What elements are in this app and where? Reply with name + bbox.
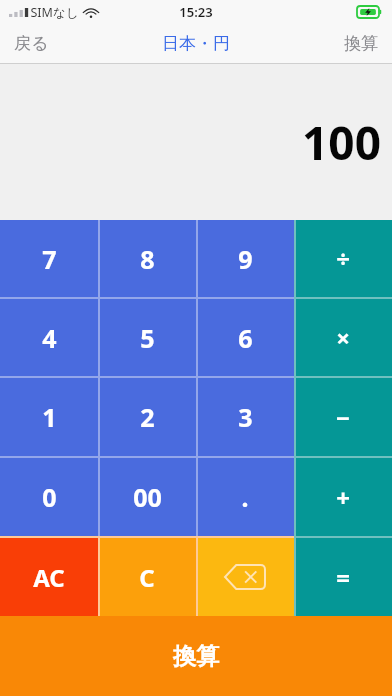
button[interactable]: 2	[98, 378, 196, 456]
staticText: 9	[238, 242, 253, 276]
staticText: SIMなし	[30, 4, 79, 21]
button[interactable]: 6	[196, 299, 294, 376]
button[interactable]: 00	[98, 458, 196, 536]
staticText: +	[336, 481, 350, 514]
staticText: 3	[238, 400, 253, 434]
staticText: 6	[238, 321, 253, 355]
staticText: 2	[140, 400, 155, 434]
button[interactable]: 1	[0, 378, 98, 456]
button[interactable]: 0	[0, 458, 98, 536]
staticText: .	[241, 480, 249, 514]
button[interactable]: 換算	[330, 24, 392, 63]
button[interactable]: =	[294, 538, 392, 616]
staticText: 日本・円	[162, 33, 230, 54]
button[interactable]: +	[294, 458, 392, 536]
staticText: 戻る	[14, 33, 49, 54]
button[interactable]: Backspace	[196, 538, 294, 616]
staticText: 15:23	[179, 3, 213, 21]
staticText: ×	[336, 321, 350, 354]
button[interactable]: 8	[98, 220, 196, 297]
staticText: 00	[133, 480, 162, 514]
staticText: =	[336, 561, 350, 594]
staticText: 0	[42, 480, 57, 514]
button[interactable]: ×	[294, 299, 392, 376]
button[interactable]: C	[98, 538, 196, 616]
button[interactable]: −	[294, 378, 392, 456]
staticText: −	[336, 401, 350, 434]
button[interactable]: 3	[196, 378, 294, 456]
staticText: 1	[42, 400, 57, 434]
button[interactable]: 7	[0, 220, 98, 297]
button[interactable]: AC	[0, 538, 98, 616]
staticText: ÷	[336, 242, 350, 275]
button[interactable]: 5	[98, 299, 196, 376]
staticText: 5	[140, 321, 155, 355]
staticText: 4	[42, 321, 57, 355]
staticText: 100	[302, 111, 381, 174]
staticText: 8	[140, 242, 155, 276]
button[interactable]: ÷	[294, 220, 392, 297]
button[interactable]: .	[196, 458, 294, 536]
button[interactable]: 9	[196, 220, 294, 297]
staticText: 換算	[344, 33, 378, 54]
staticText: C	[139, 561, 155, 594]
staticText: 換算	[173, 642, 219, 671]
button[interactable]: 日本・円	[154, 33, 238, 54]
staticText: AC	[33, 561, 65, 594]
button[interactable]: 換算	[0, 616, 392, 696]
button[interactable]: 戻る	[0, 24, 63, 63]
button[interactable]: 4	[0, 299, 98, 376]
staticText: 7	[42, 242, 57, 276]
